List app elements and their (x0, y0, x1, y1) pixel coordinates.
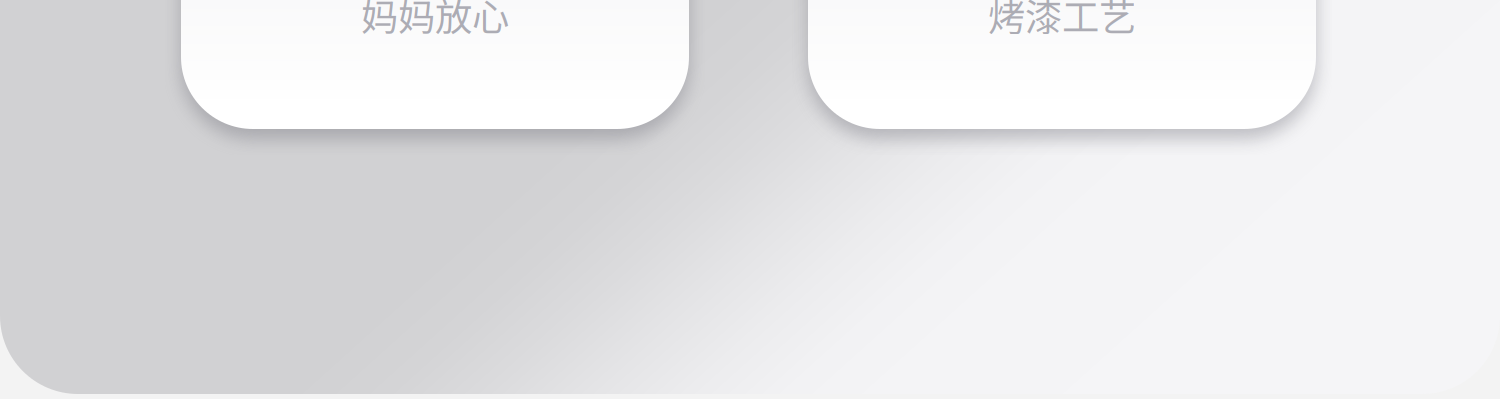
button[interactable]: 妈妈放心 (181, 0, 689, 129)
button[interactable]: 烤漆工艺 (808, 0, 1316, 129)
staticText: 妈妈放心 (361, 0, 509, 42)
staticText: 烤漆工艺 (988, 0, 1136, 42)
